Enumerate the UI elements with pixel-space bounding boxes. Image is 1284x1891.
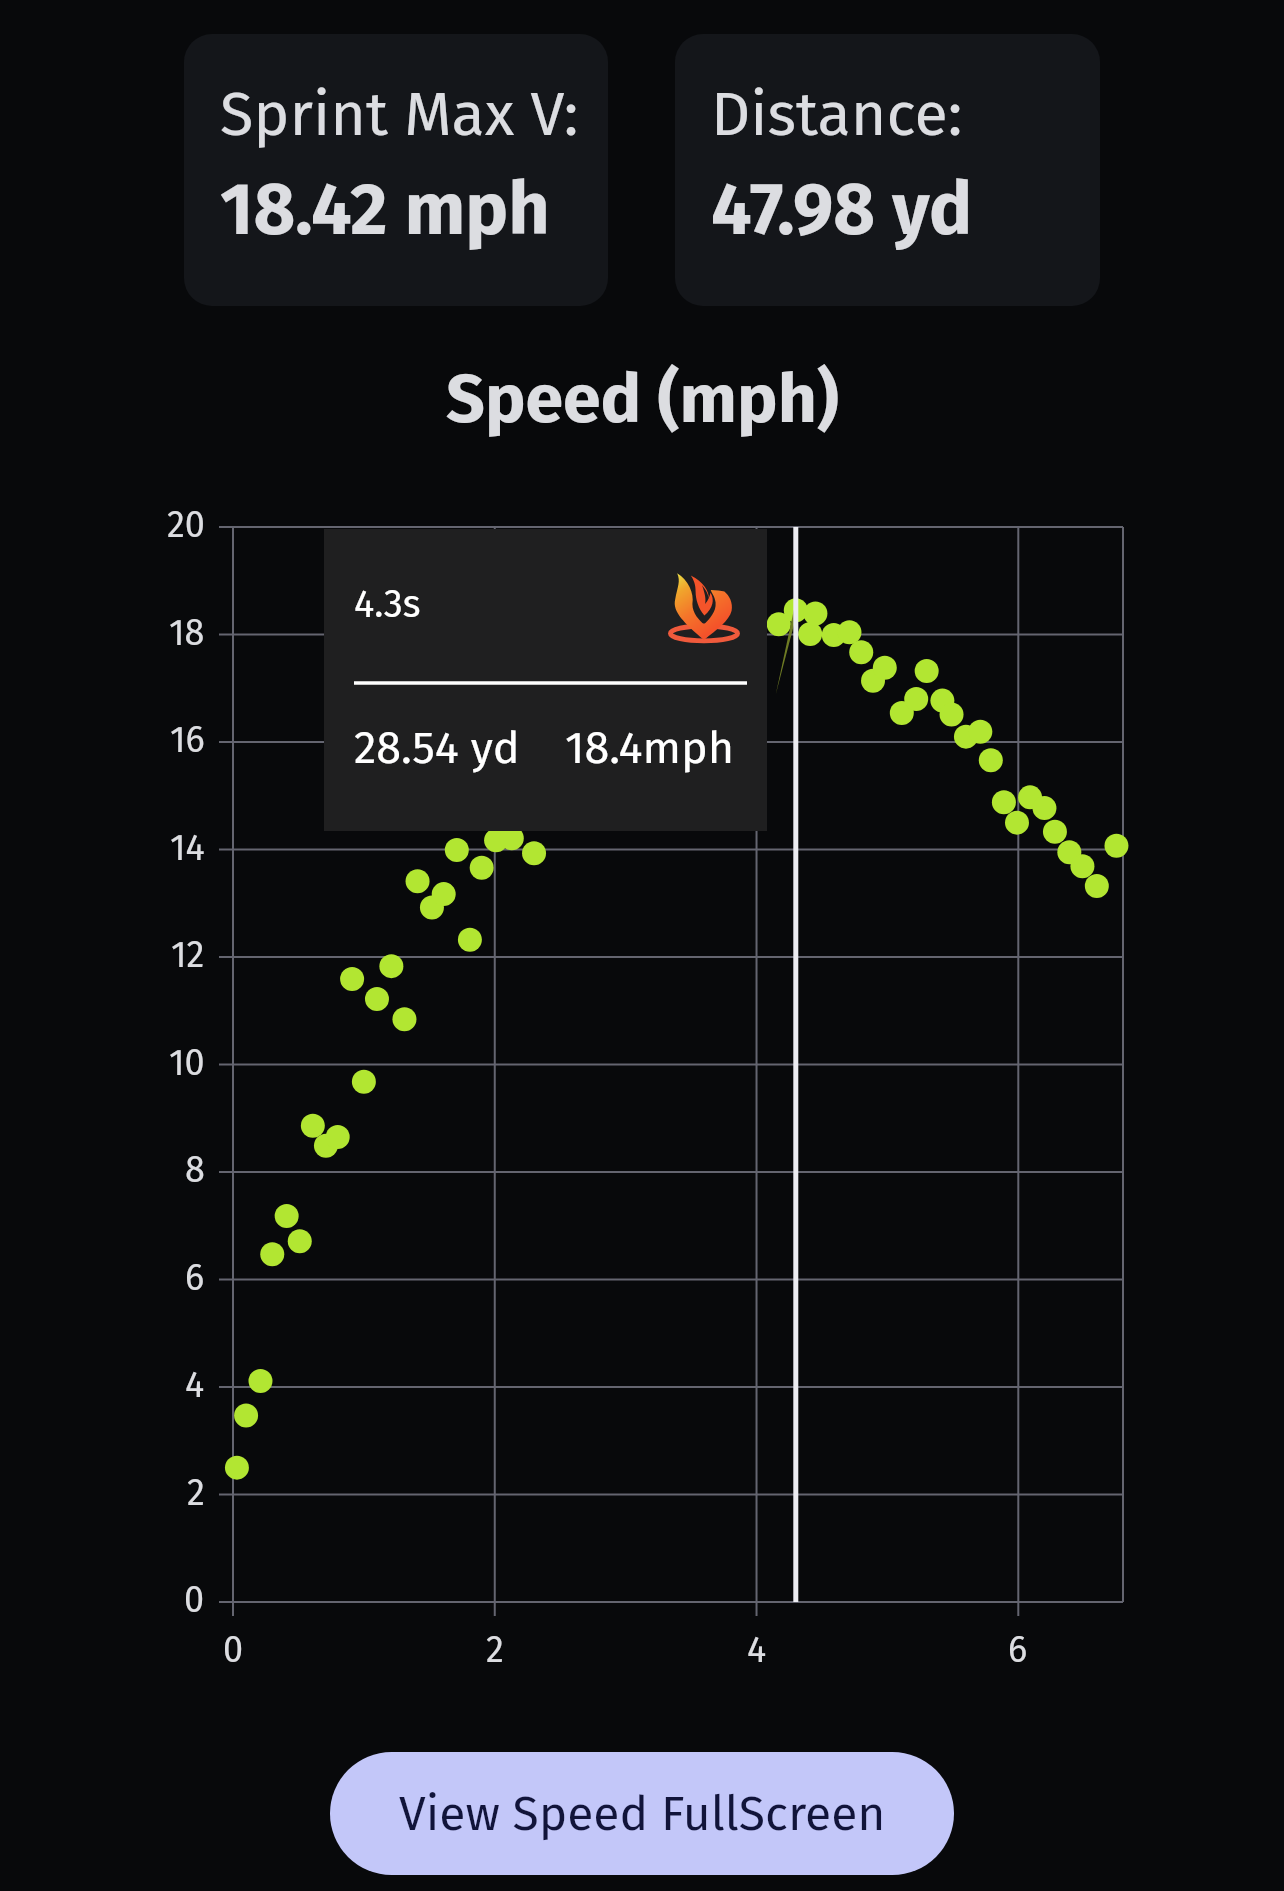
staticText: 18.42 mph: [220, 167, 550, 253]
staticText: Sprint Max V:: [220, 78, 579, 151]
button[interactable]: 4.3s: [324, 529, 767, 831]
staticText: 4.3s: [354, 581, 421, 627]
staticText: View Speed FullScreen: [399, 1785, 886, 1843]
staticText: 14: [170, 826, 205, 869]
staticText: 47.98 yd: [711, 167, 973, 253]
staticText: 18.4mph: [565, 721, 735, 775]
button[interactable]: Distance:: [675, 34, 1100, 306]
staticText: Speed (mph): [446, 358, 839, 440]
staticText: Distance:: [711, 78, 963, 151]
staticText: 6: [185, 1256, 205, 1299]
staticText: 6: [1008, 1628, 1028, 1671]
staticText: 16: [170, 718, 205, 761]
button[interactable]: View Speed FullScreen: [330, 1752, 954, 1875]
staticText: 2: [486, 1628, 504, 1671]
staticText: 28.54 yd: [354, 721, 520, 775]
staticText: 4: [185, 1363, 205, 1406]
staticText: 0: [223, 1628, 244, 1671]
staticText: 2: [187, 1471, 205, 1514]
button[interactable]: Sprint Max V:: [184, 34, 608, 306]
staticText: 8: [185, 1148, 205, 1191]
staticText: 12: [171, 933, 205, 976]
staticText: 0: [184, 1578, 205, 1621]
other: Personal best flame marker: [664, 564, 744, 644]
staticText: 10: [169, 1041, 205, 1084]
staticText: 18: [169, 611, 205, 654]
staticText: 4: [747, 1628, 767, 1671]
staticText: 20: [167, 503, 205, 546]
